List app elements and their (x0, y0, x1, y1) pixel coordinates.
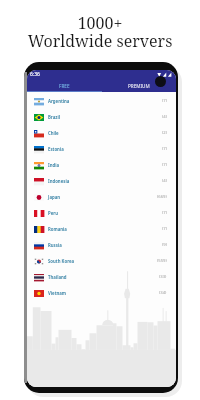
staticText: Chile (48, 130, 59, 136)
button[interactable]: South Korea (27, 253, 176, 269)
staticText: Peru (48, 210, 58, 216)
staticText: Russia (48, 242, 62, 248)
staticText: (7) (162, 146, 167, 152)
button[interactable]: India (27, 157, 176, 173)
staticText: (34) (159, 290, 167, 296)
other: Front camera (155, 76, 166, 87)
button[interactable]: Chile (27, 125, 176, 141)
staticText: (7) (162, 210, 167, 216)
button[interactable]: Estonia (27, 141, 176, 157)
button[interactable]: Russia (27, 237, 176, 253)
button[interactable]: Brazil (27, 109, 176, 125)
staticText: (559) (157, 258, 167, 264)
staticText: (9) (162, 242, 167, 248)
button[interactable]: Vietnam (27, 285, 176, 301)
staticText: Thailand (48, 274, 67, 280)
staticText: 6:36 (30, 71, 40, 78)
staticText: (7) (162, 162, 167, 168)
staticText: (33) (159, 274, 167, 280)
staticText: (7) (162, 226, 167, 232)
staticText: Japan (48, 194, 61, 200)
staticText: Argentina (48, 98, 70, 104)
button[interactable]: Romania (27, 221, 176, 237)
staticText: Romania (48, 226, 67, 232)
staticText: (7) (162, 98, 167, 104)
button[interactable]: FREE (27, 79, 101, 92)
staticText: (669) (157, 194, 167, 200)
staticText: Estonia (48, 146, 64, 152)
button[interactable]: Thailand (27, 269, 176, 285)
staticText: PREMIUM (128, 83, 150, 89)
button[interactable]: Japan (27, 189, 176, 205)
staticText: (2) (162, 130, 167, 136)
button[interactable]: Argentina (27, 93, 176, 109)
staticText: (4) (162, 114, 167, 120)
staticText: Indonesia (48, 178, 70, 184)
button[interactable]: Indonesia (27, 173, 176, 189)
button[interactable]: Peru (27, 205, 176, 221)
staticText: India (48, 162, 60, 168)
staticText: (4) (162, 178, 167, 184)
staticText: 1000+ Worldwide servers (0, 12, 200, 52)
staticText: FREE (59, 83, 70, 89)
staticText: South Korea (48, 258, 75, 264)
staticText: Brazil (48, 114, 60, 120)
staticText: Vietnam (48, 290, 67, 296)
button[interactable]: PREMIUM (101, 79, 176, 92)
